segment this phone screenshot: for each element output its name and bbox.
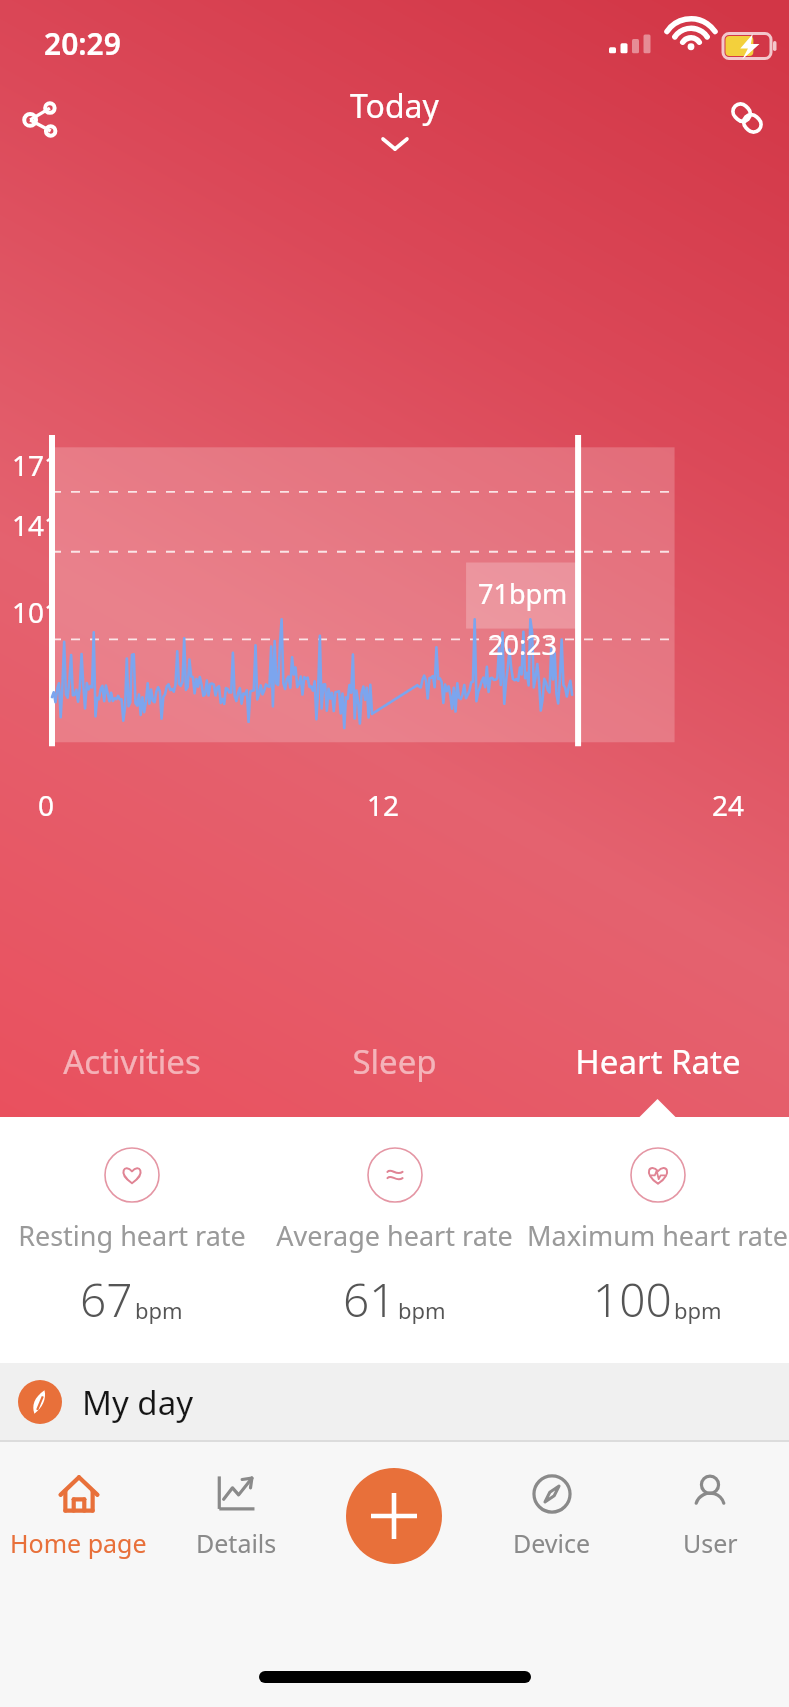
button[interactable]: Activities [0, 1039, 263, 1117]
staticText: Heart Rate [575, 1039, 741, 1084]
staticText: 61 [343, 1268, 396, 1331]
staticText: 67 [80, 1268, 133, 1331]
button[interactable]: Device [473, 1441, 631, 1591]
button[interactable]: Maximum heart rate [526, 1147, 789, 1331]
staticText: Activities [63, 1039, 201, 1084]
button[interactable]: Sleep [263, 1039, 526, 1117]
staticText: 171 [12, 446, 61, 484]
staticText: bpm [674, 1295, 722, 1325]
button[interactable]: Link [715, 86, 779, 150]
staticText: 20:23 [488, 626, 558, 663]
button[interactable]: Today [350, 84, 439, 152]
staticText: Resting heart rate [18, 1217, 246, 1254]
button[interactable]: Details [157, 1441, 315, 1591]
staticText: Today [350, 84, 439, 128]
staticText: Sleep [352, 1039, 437, 1084]
staticText: 100 [593, 1268, 672, 1331]
button[interactable]: Resting heart rate [0, 1147, 263, 1331]
staticText: 141 [12, 506, 61, 544]
button[interactable]: User [631, 1441, 789, 1591]
staticText: 71bpm [478, 575, 568, 612]
staticText: bpm [135, 1295, 183, 1325]
staticText: 20:29 [44, 23, 121, 64]
staticText: 0 [38, 786, 55, 824]
staticText: Device [513, 1526, 591, 1560]
button[interactable]: Heart Rate [526, 1039, 789, 1117]
button[interactable]: Average heart rate [263, 1147, 526, 1331]
staticText: Maximum heart rate [527, 1217, 788, 1254]
staticText: 101 [12, 593, 61, 631]
button[interactable]: Share [8, 86, 72, 150]
staticText: bpm [398, 1295, 446, 1325]
staticText: Details [196, 1526, 277, 1560]
staticText: 12 [367, 786, 400, 824]
staticText: Home page [10, 1526, 147, 1560]
button[interactable]: My day [0, 1363, 789, 1441]
staticText: Average heart rate [276, 1217, 513, 1254]
button[interactable]: Home page [0, 1441, 157, 1591]
staticText: 24 [712, 786, 745, 824]
staticText: User [683, 1526, 738, 1560]
button[interactable]: Add [346, 1468, 442, 1564]
staticText: My day [82, 1380, 193, 1425]
